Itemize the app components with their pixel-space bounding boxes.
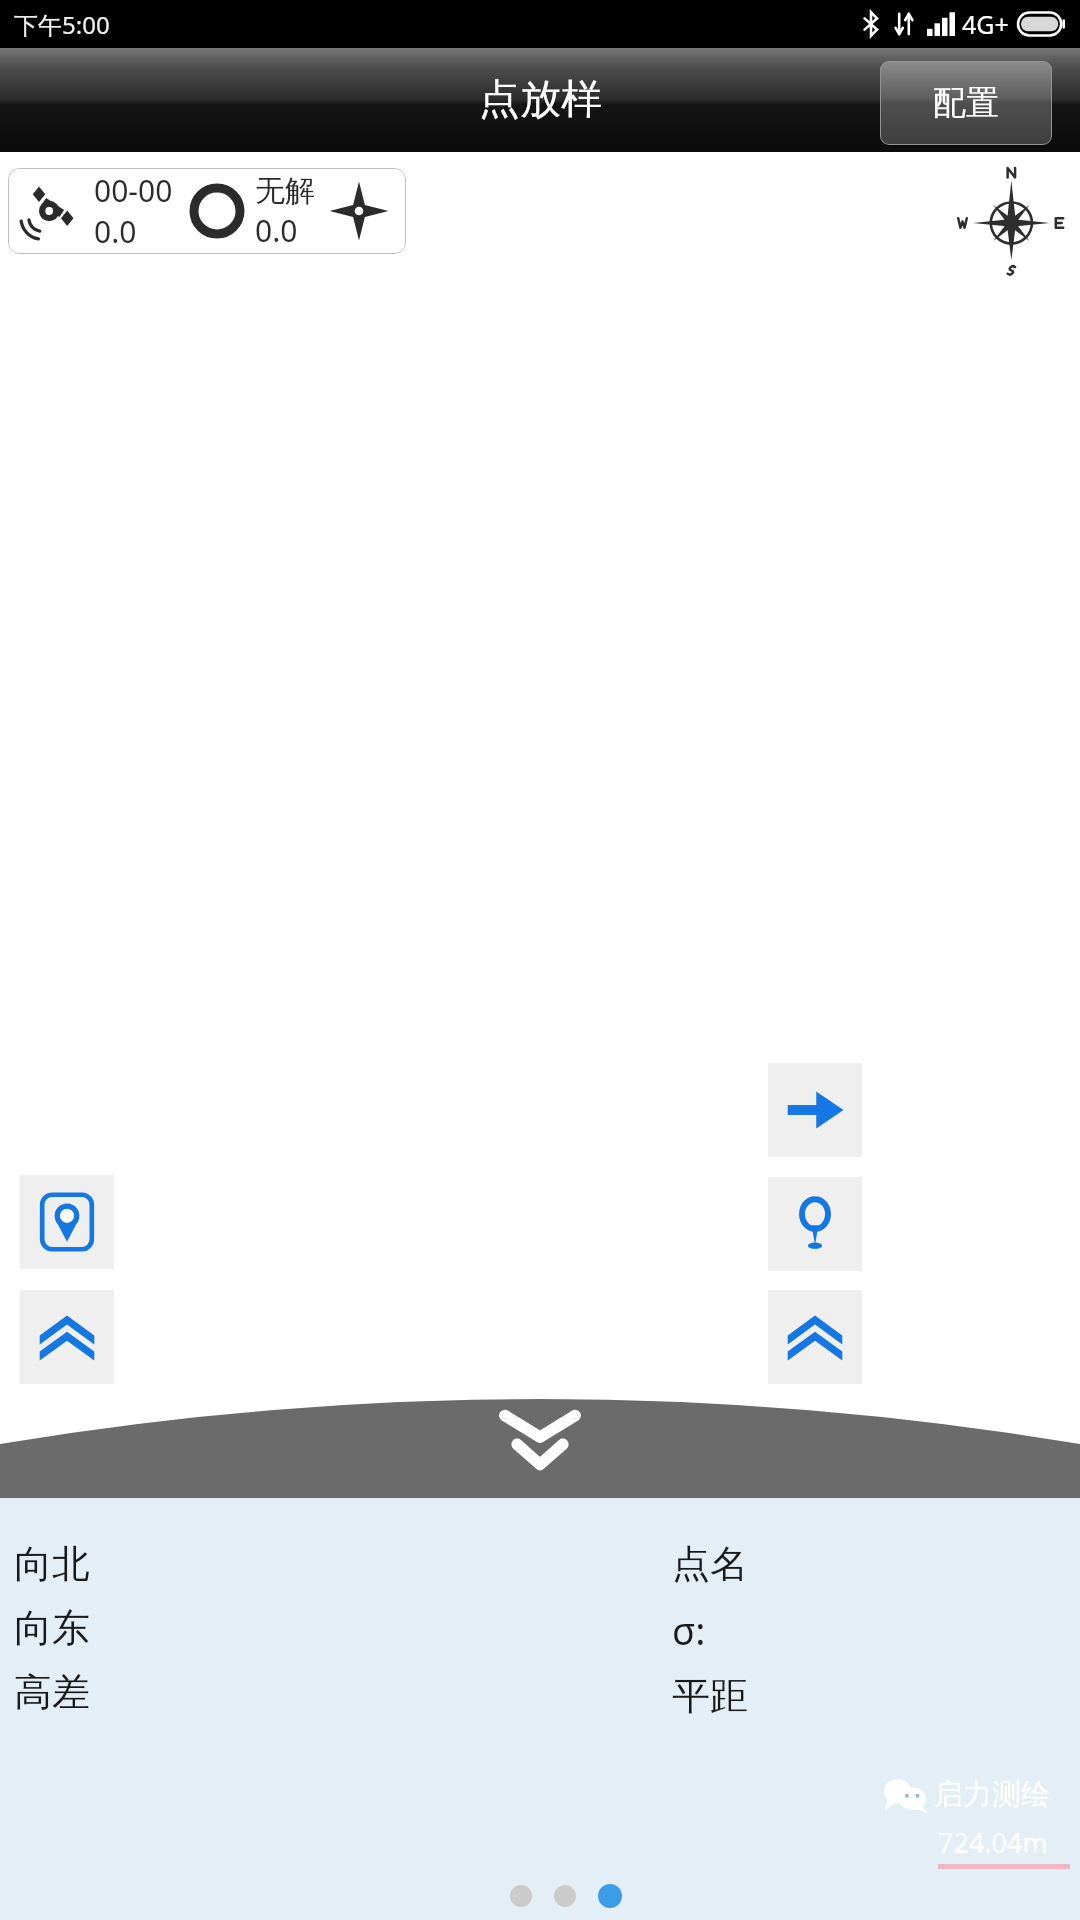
- button[interactable]: 配置: [880, 61, 1052, 145]
- staticText: 向东: [14, 1604, 90, 1652]
- staticText: 0.0: [94, 211, 137, 252]
- button[interactable]: Zoom in: [20, 1290, 114, 1384]
- button[interactable]: Compass: [950, 158, 1068, 274]
- staticText: 向北: [14, 1540, 90, 1588]
- staticText: 配置: [933, 82, 999, 124]
- staticText: 平距: [672, 1672, 748, 1720]
- button[interactable]: Target point: [768, 1177, 862, 1271]
- staticText: 点名: [672, 1540, 748, 1588]
- staticText: σ:: [672, 1604, 706, 1656]
- button[interactable]: Next point: [768, 1063, 862, 1157]
- staticText: 高差: [14, 1668, 90, 1716]
- button[interactable]: Zoom out: [768, 1290, 862, 1384]
- staticText: 4G+: [962, 7, 1009, 41]
- button[interactable]: 00-00: [8, 168, 406, 254]
- staticText: 00-00: [94, 170, 173, 211]
- staticText: 724.04m: [938, 1824, 1048, 1861]
- staticText: 启力测绘: [934, 1776, 1050, 1813]
- button[interactable]: Collapse panel: [475, 1388, 605, 1492]
- staticText: 无解: [255, 172, 315, 210]
- staticText: 点放样: [479, 74, 602, 126]
- staticText: 下午5:00: [14, 8, 110, 41]
- button[interactable]: Baidu map: [20, 1175, 114, 1269]
- staticText: 0.0: [255, 210, 298, 251]
